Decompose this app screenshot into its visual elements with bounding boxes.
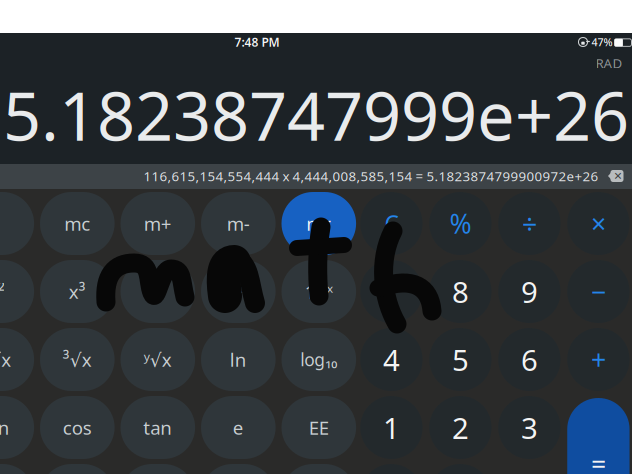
staticText: 7:48 PM xyxy=(234,34,279,50)
button[interactable]: x² xyxy=(0,260,34,323)
button[interactable]: cosh xyxy=(40,464,115,474)
staticText: 3 xyxy=(521,408,538,447)
button[interactable]: C xyxy=(360,192,422,255)
button[interactable]: π xyxy=(201,464,276,474)
staticText: ✕ xyxy=(613,170,622,182)
staticText: RAD xyxy=(595,54,622,72)
staticText: 10ˣ xyxy=(305,279,333,304)
staticText: 4 xyxy=(383,340,400,379)
staticText: 9 xyxy=(521,272,538,311)
button[interactable]: xʸ xyxy=(120,260,195,323)
button[interactable]: ) xyxy=(0,192,34,255)
button[interactable]: m+ xyxy=(120,192,195,255)
button[interactable]: cos xyxy=(40,396,115,459)
button[interactable]: ³√x xyxy=(40,328,115,391)
button[interactable]: Rand xyxy=(281,464,356,474)
button[interactable]: − xyxy=(567,260,629,323)
staticText: % xyxy=(449,206,471,241)
button[interactable]: tan xyxy=(120,396,195,459)
button[interactable]: e xyxy=(201,396,276,459)
staticText: mc xyxy=(64,211,90,236)
button[interactable]: sinh xyxy=(0,464,34,474)
staticText: = xyxy=(591,446,606,474)
staticText: ÷ xyxy=(522,206,537,241)
button[interactable]: 7 xyxy=(360,260,422,323)
button[interactable]: eˣ xyxy=(201,260,276,323)
button[interactable]: log₁₀ xyxy=(281,328,356,391)
staticText: mr xyxy=(306,211,331,236)
button[interactable]: 8 xyxy=(429,260,491,323)
button[interactable]: . xyxy=(429,464,491,474)
button[interactable]: 4 xyxy=(360,328,422,391)
staticText: 5.18238747999e+26 xyxy=(3,71,629,159)
staticText: ʸ√x xyxy=(144,347,172,372)
button[interactable]: EE xyxy=(281,396,356,459)
button[interactable]: tanh xyxy=(120,464,195,474)
button[interactable]: × xyxy=(567,192,629,255)
button[interactable]: ln xyxy=(201,328,276,391)
staticText: × xyxy=(591,206,606,241)
staticText: 1 xyxy=(383,408,400,447)
button[interactable]: mr xyxy=(281,192,356,255)
button[interactable]: m- xyxy=(201,192,276,255)
staticText: ²√x xyxy=(0,347,11,372)
button[interactable]: mc xyxy=(40,192,115,255)
staticText: C xyxy=(384,208,398,238)
button[interactable]: = xyxy=(567,398,629,474)
button[interactable]: + xyxy=(567,328,629,391)
staticText: x² xyxy=(0,279,5,304)
button[interactable]: ²√x xyxy=(0,328,34,391)
staticText: sin xyxy=(0,415,10,440)
button[interactable]: 2 xyxy=(429,396,491,459)
button[interactable]: 5 xyxy=(429,328,491,391)
button[interactable]: Delete xyxy=(607,169,624,183)
staticText: x³ xyxy=(69,279,86,304)
button[interactable]: 6 xyxy=(498,328,560,391)
button[interactable]: sin xyxy=(0,396,34,459)
staticText: xʸ xyxy=(150,279,166,304)
staticText: 2 xyxy=(452,408,469,447)
staticText: m- xyxy=(227,211,250,236)
button[interactable]: % xyxy=(429,192,491,255)
button[interactable]: 3 xyxy=(498,396,560,459)
staticText: log₁₀ xyxy=(300,348,337,371)
staticText: eˣ xyxy=(230,279,247,304)
staticText: ³√x xyxy=(63,347,92,372)
button[interactable]: ÷ xyxy=(498,192,560,255)
staticText: 47% xyxy=(591,35,612,49)
staticText: 7 xyxy=(383,272,400,311)
button[interactable]: ʸ√x xyxy=(120,328,195,391)
staticText: ln xyxy=(230,347,247,372)
staticText: 116,615,154,554,444 x 4,444,008,585,154 … xyxy=(143,167,598,185)
staticText: 6 xyxy=(521,340,538,379)
staticText: 8 xyxy=(452,272,469,311)
button[interactable]: 9 xyxy=(498,260,560,323)
button[interactable]: 0 xyxy=(360,464,422,474)
staticText: EE xyxy=(309,415,329,440)
staticText: 5 xyxy=(452,340,469,379)
button[interactable]: 10ˣ xyxy=(281,260,356,323)
staticText: cos xyxy=(63,415,92,440)
button[interactable]: x³ xyxy=(40,260,115,323)
staticText: + xyxy=(591,342,606,377)
staticText: − xyxy=(591,274,606,309)
staticText: e xyxy=(233,415,244,440)
staticText: tan xyxy=(143,415,172,440)
button[interactable]: 1 xyxy=(360,396,422,459)
staticText: m+ xyxy=(144,211,172,236)
